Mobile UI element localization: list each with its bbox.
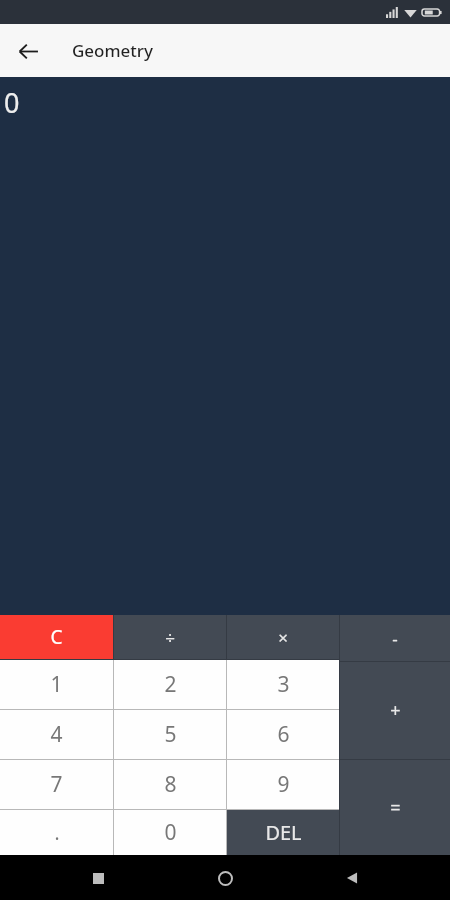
staticText: 0 [164,818,177,847]
button[interactable]: Back [8,31,48,71]
staticText: 5 [164,720,177,749]
button[interactable]: . [0,810,113,855]
staticText: = [390,795,401,820]
button[interactable]: 8 [114,760,226,809]
button[interactable]: 0 [114,810,226,855]
button[interactable]: 5 [114,710,226,759]
staticText: 4 [50,720,63,749]
button[interactable]: 9 [227,760,339,809]
button[interactable]: ÷ [114,615,226,659]
button[interactable]: + [340,662,450,759]
staticText: 3 [277,670,290,699]
staticText: 7 [50,770,63,799]
staticText: C [50,624,63,650]
staticText: DEL [265,819,302,846]
button[interactable]: Home [203,856,247,900]
staticText: 8 [164,770,177,799]
button[interactable]: Back [330,856,374,900]
staticText: - [392,627,398,650]
staticText: × [278,626,288,649]
button[interactable]: Recents [76,856,120,900]
staticText: ÷ [165,626,175,649]
staticText: 0 [4,84,20,121]
button[interactable]: 6 [227,710,339,759]
button[interactable]: 2 [114,660,226,709]
staticText: . [54,820,60,846]
button[interactable]: 1 [0,660,113,709]
staticText: 9 [277,770,290,799]
button[interactable]: 4 [0,710,113,759]
button[interactable]: 3 [227,660,339,709]
button[interactable]: C [0,615,113,659]
button[interactable]: = [340,760,450,855]
staticText: 6 [277,720,290,749]
staticText: Geometry [72,39,154,62]
button[interactable]: DEL [227,810,339,855]
button[interactable]: 7 [0,760,113,809]
staticText: 1 [50,670,63,699]
staticText: 2 [164,670,177,699]
button[interactable]: × [227,615,339,659]
staticText: + [390,698,401,723]
button[interactable]: - [340,615,450,661]
